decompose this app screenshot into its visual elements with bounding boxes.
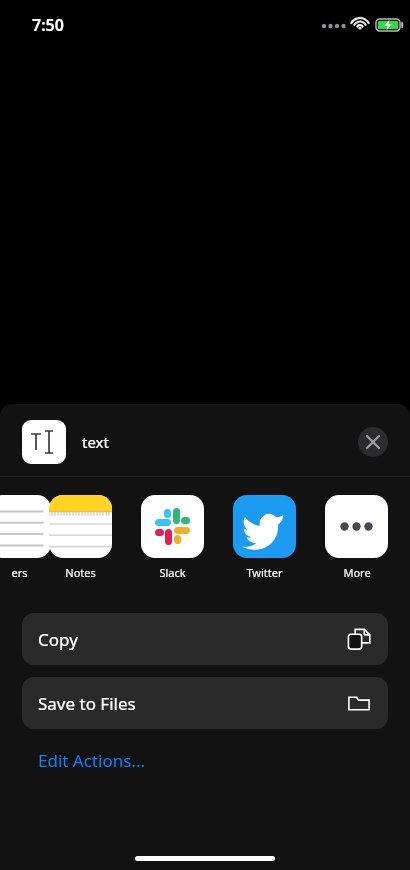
staticText: Twitter [246, 565, 283, 580]
button[interactable]: Save to Files [22, 677, 388, 729]
button[interactable]: ers [0, 495, 51, 580]
staticText: text [82, 432, 109, 452]
button[interactable]: Edit Actions... [38, 749, 145, 772]
button[interactable]: Slack [141, 495, 204, 580]
staticText: 7:50 [32, 14, 64, 36]
staticText: Slack [159, 565, 186, 580]
button[interactable]: Copy [22, 613, 388, 665]
staticText: Edit Actions... [38, 749, 145, 772]
button[interactable]: Twitter [233, 495, 296, 580]
button[interactable]: Close [358, 427, 388, 457]
staticText: ers [11, 565, 28, 580]
staticText: Copy [38, 628, 78, 651]
button[interactable]: Notes [49, 495, 112, 580]
staticText: Save to Files [38, 692, 136, 715]
staticText: Notes [65, 565, 96, 580]
staticText: More [343, 565, 371, 580]
button[interactable]: More [325, 495, 388, 580]
